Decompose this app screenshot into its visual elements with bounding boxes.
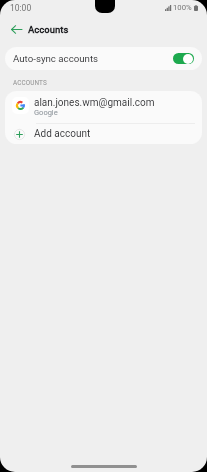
staticText: Auto-sync accounts [13,53,99,64]
button[interactable]: Back [5,18,27,40]
staticText: 100% [173,3,192,12]
staticText: Accounts [28,24,69,35]
button[interactable]: Auto-sync accounts [5,47,202,70]
staticText: alan.jones.wm@gmail.com [34,97,155,109]
staticText: Add account [34,128,91,140]
button[interactable]: alan.jones.wm@gmail.com [5,91,202,123]
button[interactable]: Add account [5,124,202,144]
staticText: Google [34,108,58,117]
staticText: 10:00 [10,3,32,13]
staticText: ACCOUNTS [13,79,47,87]
